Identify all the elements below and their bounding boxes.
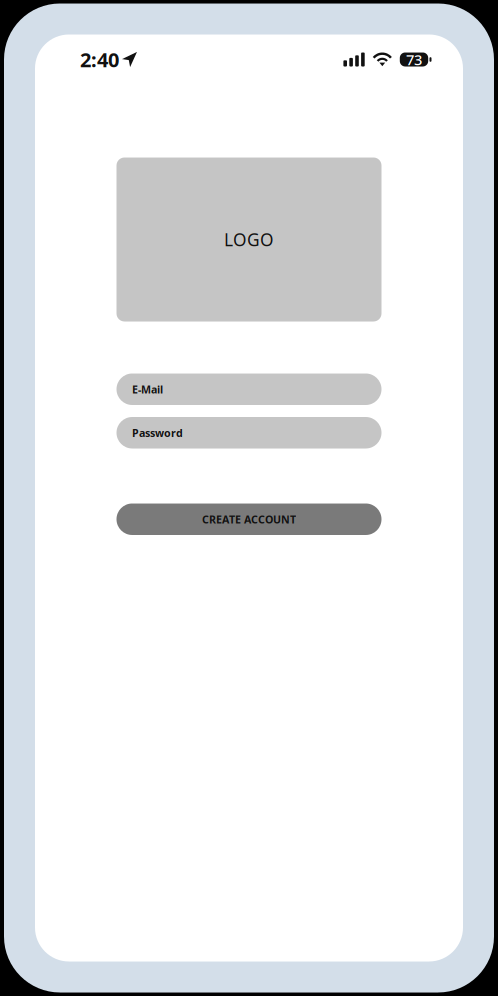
staticText: Password xyxy=(132,426,183,440)
staticText: E-Mail xyxy=(132,382,163,396)
staticText: 2:40 xyxy=(80,46,119,73)
button[interactable]: CREATE ACCOUNT xyxy=(116,503,381,535)
button[interactable]: E-Mail xyxy=(116,373,381,405)
button[interactable]: Password xyxy=(116,417,381,448)
staticText: LOGO xyxy=(224,228,274,251)
staticText: CREATE ACCOUNT xyxy=(202,512,296,526)
staticText: 73 xyxy=(406,50,422,69)
